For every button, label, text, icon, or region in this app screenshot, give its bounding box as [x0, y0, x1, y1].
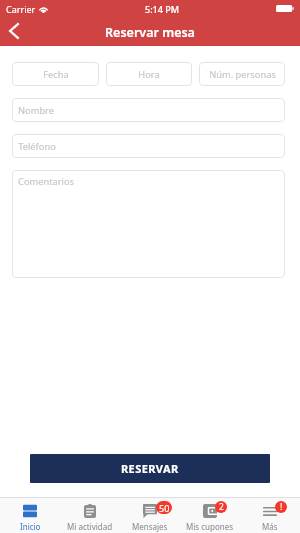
button[interactable]: Hora [106, 62, 192, 86]
button[interactable]: Back [0, 17, 28, 45]
button[interactable]: 50 [120, 498, 180, 533]
button[interactable]: RESERVAR [30, 454, 270, 483]
staticText: Reservar mesa [0, 24, 300, 41]
button[interactable]: Núm. personas [199, 62, 285, 86]
staticText: Hora [138, 68, 160, 81]
button[interactable]: ! [240, 498, 300, 533]
staticText: Mi actividad [67, 521, 113, 532]
staticText: RESERVAR [121, 461, 179, 476]
button[interactable]: Nombre [12, 98, 285, 122]
staticText: Más [262, 521, 278, 532]
staticText: 5:14 PM [145, 3, 179, 15]
button[interactable]: Fecha [12, 62, 99, 86]
staticText: Nombre [18, 104, 54, 117]
staticText: 2 [219, 501, 224, 513]
staticText: Carrier [6, 3, 36, 15]
staticText: Teléfono [18, 140, 56, 153]
button[interactable]: Mi actividad [60, 498, 120, 533]
staticText: Mensajes [132, 521, 168, 532]
button[interactable]: Inicio [0, 498, 60, 533]
staticText: Inicio [20, 521, 41, 532]
button[interactable]: Comentarios [12, 170, 285, 278]
staticText: Fecha [43, 68, 69, 81]
staticText: 50 [159, 502, 170, 514]
staticText: ! [280, 501, 283, 513]
button[interactable]: Teléfono [12, 134, 285, 158]
staticText: Mis cupones [186, 521, 234, 532]
button[interactable]: 2 [180, 498, 240, 533]
staticText: Comentarios [18, 175, 75, 188]
staticText: Núm. personas [209, 68, 276, 81]
